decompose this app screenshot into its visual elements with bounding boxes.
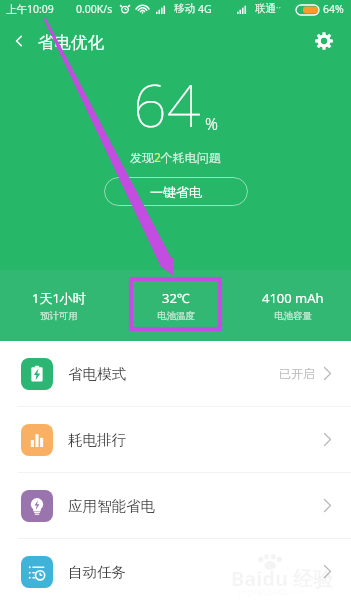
staticText: 应用智能省电 <box>68 497 155 515</box>
button[interactable]: 省电模式 <box>0 341 351 406</box>
staticText: 上午10:09 <box>6 2 54 16</box>
staticText: 预计可用 <box>40 310 78 322</box>
staticText: 32℃ <box>162 289 190 307</box>
button[interactable]: 耗电排行 <box>0 407 351 472</box>
staticText: ·· <box>276 1 281 13</box>
staticText: 64 <box>133 64 201 144</box>
staticText: 发现2个耗电问题 <box>130 149 221 165</box>
staticText: 4G <box>198 2 212 16</box>
button[interactable]: Back <box>0 22 38 60</box>
staticText: 一键省电 <box>150 184 202 200</box>
staticText: 已开启 <box>279 366 315 381</box>
staticText: 省电优化 <box>38 32 104 53</box>
button[interactable]: 应用智能省电 <box>0 473 351 538</box>
staticText: 省电模式 <box>68 365 126 383</box>
staticText: % <box>205 113 218 135</box>
staticText: 自动任务 <box>68 563 126 581</box>
staticText: 64% <box>323 2 344 16</box>
staticText: 电池温度 <box>157 310 195 322</box>
staticText: 1天1小时 <box>32 289 86 307</box>
staticText: 移动 <box>174 2 195 15</box>
staticText: 耗电排行 <box>68 431 126 449</box>
button[interactable]: 自动任务 <box>0 539 351 604</box>
staticText: 4100 mAh <box>262 289 324 307</box>
staticText: 联通 <box>255 2 276 15</box>
staticText: 0.00K/s <box>76 2 113 16</box>
button[interactable]: Settings <box>303 20 345 62</box>
staticText: Baidu 经验 <box>231 565 334 592</box>
staticText: 电池容量 <box>274 310 312 322</box>
button[interactable]: 一键省电 <box>104 177 248 206</box>
